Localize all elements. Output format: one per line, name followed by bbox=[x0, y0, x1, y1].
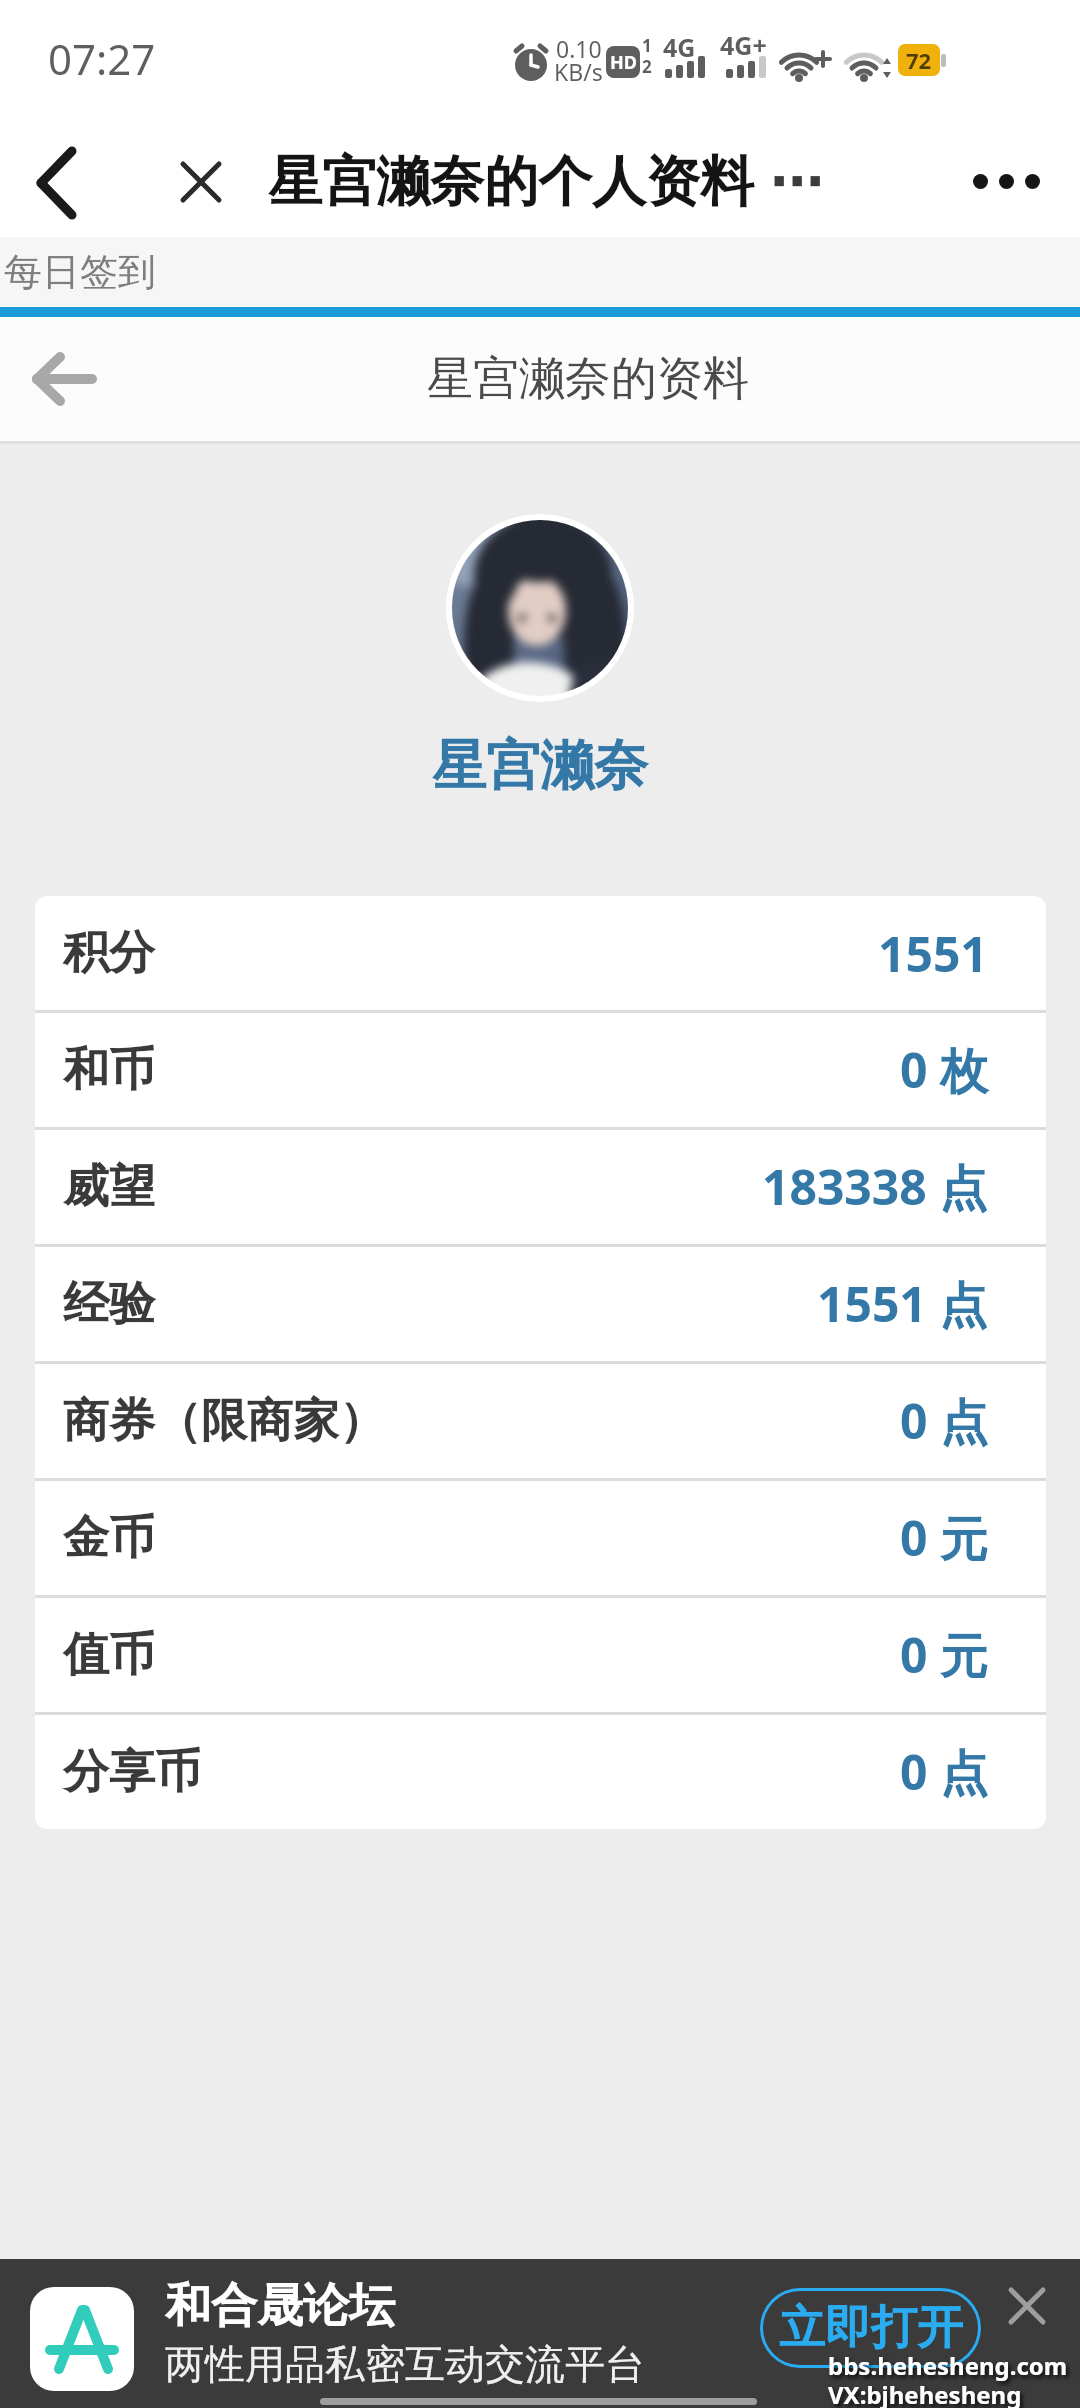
staticText: 0 元 bbox=[900, 1622, 988, 1688]
button[interactable]: 经验 bbox=[35, 1247, 1046, 1361]
staticText: 0 点 bbox=[900, 1739, 988, 1805]
staticText: 星宫濑奈的资料 bbox=[427, 350, 749, 408]
staticText: 07:27 bbox=[48, 30, 156, 87]
staticText: 1551 bbox=[878, 921, 988, 986]
button[interactable]: 威望 bbox=[35, 1130, 1046, 1244]
button[interactable] bbox=[998, 2277, 1056, 2335]
staticText: 值币 bbox=[63, 1626, 155, 1684]
staticText: 星宫濑奈 bbox=[0, 732, 1080, 800]
staticText: 和合晟论坛 bbox=[165, 2277, 395, 2335]
button[interactable]: 金币 bbox=[35, 1481, 1046, 1595]
button[interactable]: 立即打开 bbox=[760, 2288, 981, 2368]
button[interactable]: 积分 bbox=[35, 896, 1046, 1010]
staticText: 立即打开 bbox=[779, 2299, 963, 2357]
staticText: 1551 点 bbox=[817, 1271, 988, 1337]
button[interactable]: 商券（限商家） bbox=[35, 1364, 1046, 1478]
staticText: 72 bbox=[906, 45, 932, 75]
button[interactable] bbox=[20, 143, 100, 223]
staticText: 积分 bbox=[63, 924, 155, 982]
staticText: 和币 bbox=[63, 1041, 155, 1099]
staticText: 威望 bbox=[63, 1158, 155, 1216]
staticText: 1 bbox=[642, 34, 652, 57]
staticText: 经验 bbox=[63, 1275, 155, 1333]
staticText: 星宫濑奈的个人资料 bbox=[268, 148, 754, 216]
staticText: KB/s bbox=[554, 56, 603, 87]
staticText: HD bbox=[610, 50, 637, 75]
staticText: 商券（限商家） bbox=[63, 1392, 385, 1450]
staticText: 两性用品私密互动交流平台 bbox=[165, 2339, 645, 2389]
staticText: 每日签到 bbox=[4, 248, 156, 296]
staticText: 金币 bbox=[63, 1509, 155, 1567]
staticText: 分享币 bbox=[63, 1743, 201, 1801]
staticText: 4G+ bbox=[720, 28, 767, 62]
staticText: 0.10 bbox=[556, 33, 602, 64]
button[interactable] bbox=[973, 174, 1040, 189]
button[interactable]: 分享币 bbox=[35, 1715, 1046, 1829]
staticText: 0 枚 bbox=[900, 1037, 988, 1103]
staticText: bbs.hehesheng.com bbox=[828, 2349, 1068, 2382]
staticText: ⋯ bbox=[770, 150, 824, 213]
staticText: 0 点 bbox=[900, 1388, 988, 1454]
staticText: VX:bjhehesheng bbox=[828, 2378, 1022, 2408]
button[interactable] bbox=[168, 149, 234, 215]
staticText: 183338 点 bbox=[762, 1154, 988, 1220]
button[interactable]: 和币 bbox=[35, 1013, 1046, 1127]
staticText: 4G bbox=[663, 30, 696, 64]
staticText: 2 bbox=[642, 55, 652, 78]
button[interactable] bbox=[20, 339, 110, 419]
staticText: 0 元 bbox=[900, 1505, 988, 1571]
button[interactable]: 值币 bbox=[35, 1598, 1046, 1712]
